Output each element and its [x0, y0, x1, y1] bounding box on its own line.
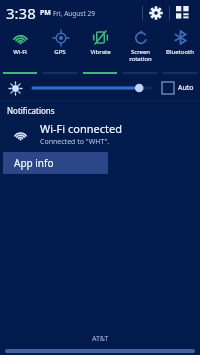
button[interactable]: GPS	[40, 26, 80, 76]
button[interactable]: Bluetooth	[160, 26, 200, 76]
staticText: Vibrate	[90, 48, 111, 56]
staticText: Connected to "WHT".	[40, 137, 110, 147]
button[interactable]: Brightness	[30, 76, 154, 100]
button[interactable]: Screen rotation	[120, 26, 160, 76]
staticText: GPS	[54, 48, 66, 56]
button[interactable]: Settings	[143, 0, 169, 26]
button[interactable]: Close panel	[0, 346, 200, 355]
staticText: PM	[40, 8, 51, 18]
button[interactable]: Vibrate	[80, 26, 120, 76]
button[interactable]: Wi-Fi connected	[0, 119, 200, 149]
staticText: Notifications	[7, 105, 55, 116]
staticText: Screen rotation	[129, 48, 152, 63]
staticText: AT&T	[92, 334, 109, 344]
staticText: Auto	[178, 83, 194, 93]
staticText: Bluetooth	[166, 48, 194, 56]
staticText: Wi-Fi	[13, 48, 27, 56]
staticText: Wi-Fi connected	[40, 121, 122, 136]
staticText: 3:38	[6, 3, 36, 23]
button[interactable]: App info	[3, 152, 108, 174]
button[interactable]: Edit quick settings	[170, 0, 196, 26]
button[interactable]: Wi-Fi	[0, 26, 40, 76]
staticText: Fri, August 29	[53, 9, 95, 18]
staticText: App info	[14, 156, 54, 170]
button[interactable]: Auto	[162, 76, 194, 100]
